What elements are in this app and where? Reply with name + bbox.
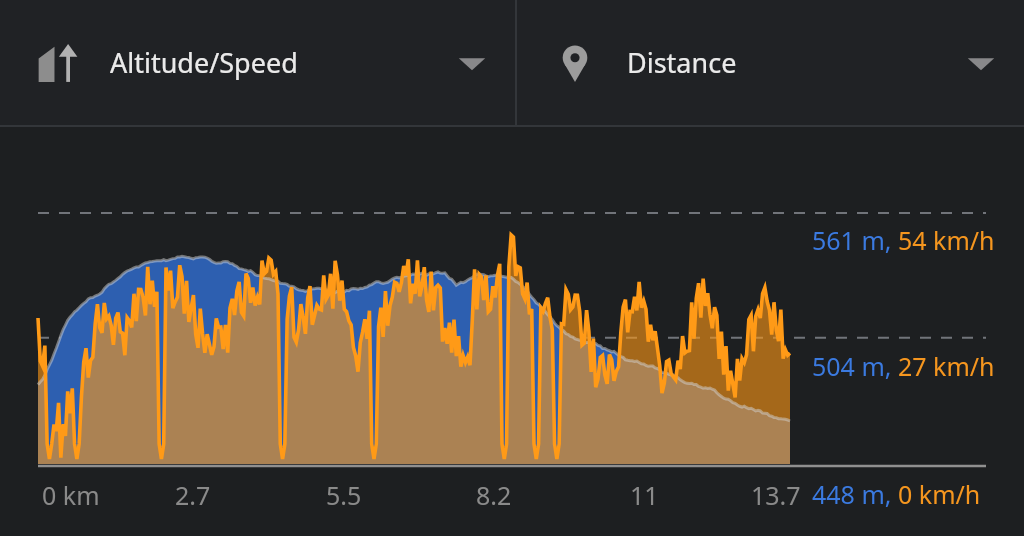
staticText: 8.2: [476, 478, 512, 512]
other: Altitude and Speed metric: [36, 41, 80, 85]
staticText: 448 m, 0 km/h: [812, 477, 981, 511]
staticText: 504 m, 27 km/h: [812, 349, 995, 383]
button[interactable]: Altitude and Speed metric: [0, 0, 515, 125]
staticText: 11: [630, 478, 659, 512]
button[interactable]: Distance axis: [517, 0, 1024, 125]
other: Distance axis: [553, 41, 597, 85]
staticText: 13.7: [751, 478, 801, 512]
staticText: 561 m, 54 km/h: [812, 223, 995, 257]
staticText: 5.5: [326, 478, 362, 512]
staticText: 2.7: [175, 478, 211, 512]
staticText: 0 km: [42, 478, 100, 512]
staticText: Altitude/Speed: [110, 44, 298, 81]
staticText: Distance: [627, 44, 737, 81]
